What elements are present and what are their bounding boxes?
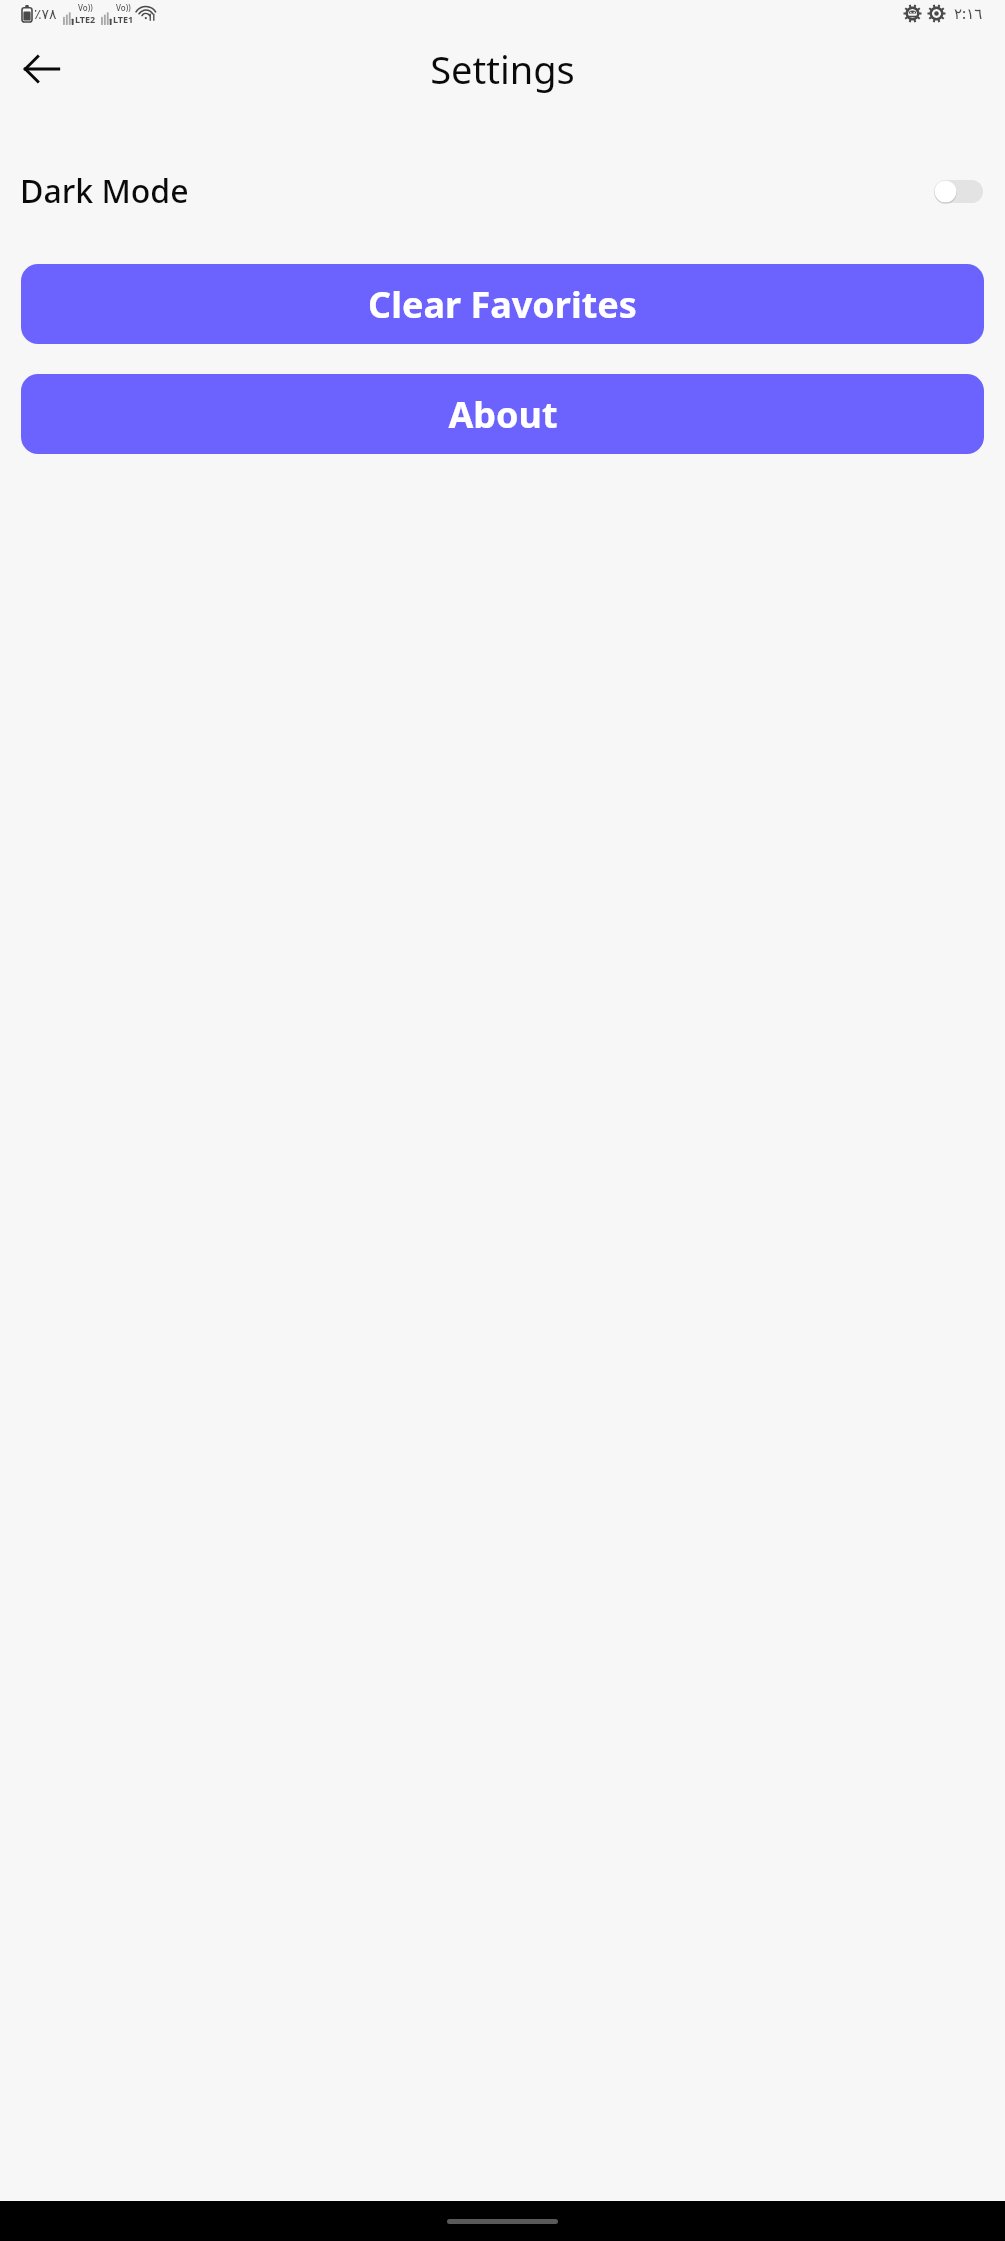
staticText: LTE2 xyxy=(75,13,96,25)
staticText: ٪٧٨ xyxy=(34,6,57,22)
staticText: Dark Mode xyxy=(20,169,189,213)
button[interactable]: Clear Favorites xyxy=(21,264,984,344)
staticText: Clear Favorites xyxy=(368,280,637,329)
staticText: Settings xyxy=(430,43,575,95)
staticText: Vo)) xyxy=(78,2,93,13)
staticText: ٢:١٦ xyxy=(954,3,983,23)
staticText: About xyxy=(448,390,558,439)
staticText: Vo)) xyxy=(116,2,131,13)
button[interactable]: About xyxy=(21,374,984,454)
button[interactable]: Back xyxy=(14,41,70,97)
button[interactable]: Dark Mode xyxy=(0,157,1005,225)
button[interactable]: Dark Mode toggle, off xyxy=(934,180,983,203)
staticText: LTE1 xyxy=(113,13,134,25)
